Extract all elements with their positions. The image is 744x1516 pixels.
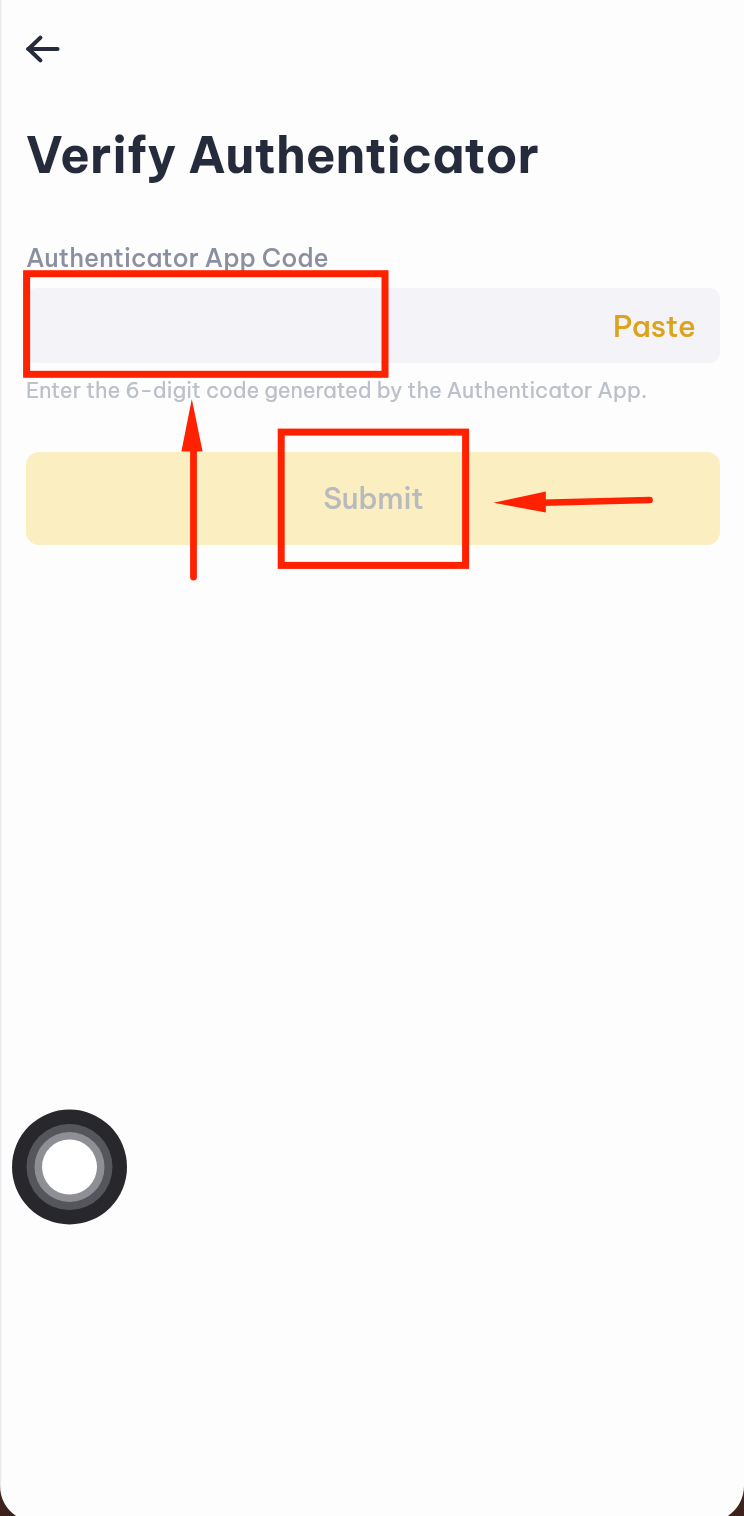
button[interactable]: Submit — [26, 452, 720, 545]
staticText: Authenticator App Code — [26, 242, 329, 274]
button[interactable]: Back — [6, 16, 80, 82]
staticText: Enter the 6-digit code generated by the … — [26, 377, 648, 404]
staticText: Submit — [323, 480, 424, 517]
staticText: Verify Authenticator — [26, 124, 540, 186]
button[interactable]: Paste — [26, 288, 720, 363]
staticText: Paste — [613, 307, 696, 344]
button[interactable]: Paste — [589, 293, 720, 358]
